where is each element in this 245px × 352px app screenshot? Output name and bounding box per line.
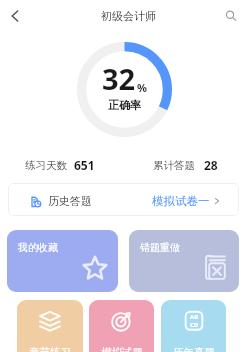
staticText: 累计答题 (153, 159, 195, 172)
staticText: 我的收藏 (18, 241, 58, 254)
staticText: 错题重做 (140, 241, 180, 254)
staticText: CD (190, 321, 199, 329)
staticText: 初级会计师 (101, 9, 156, 23)
staticText: 32 (102, 59, 136, 98)
button[interactable]: 历史答题 (8, 183, 123, 216)
button[interactable]: Search (219, 4, 243, 28)
staticText: 模拟试卷一 (152, 194, 210, 208)
staticText: 正确率 (108, 98, 141, 112)
staticText: 历史答题 (48, 194, 92, 208)
staticText: 模拟试题 (101, 346, 143, 352)
button[interactable]: 模拟试卷一 (152, 183, 239, 216)
staticText: % (137, 80, 147, 95)
button[interactable]: AB (161, 300, 226, 352)
button[interactable]: 我的收藏 (7, 230, 118, 292)
button[interactable]: Back (3, 4, 27, 28)
staticText: 章节练习 (29, 346, 71, 352)
staticText: 28 (204, 157, 218, 173)
staticText: 练习天数 (25, 159, 67, 172)
button[interactable]: 错题重做 (129, 230, 239, 292)
staticText: AB (190, 313, 199, 321)
button[interactable]: 模拟试题 (89, 300, 154, 352)
staticText: 651 (74, 157, 95, 173)
button[interactable]: 章节练习 (17, 300, 83, 352)
staticText: 历年真题 (173, 346, 215, 352)
